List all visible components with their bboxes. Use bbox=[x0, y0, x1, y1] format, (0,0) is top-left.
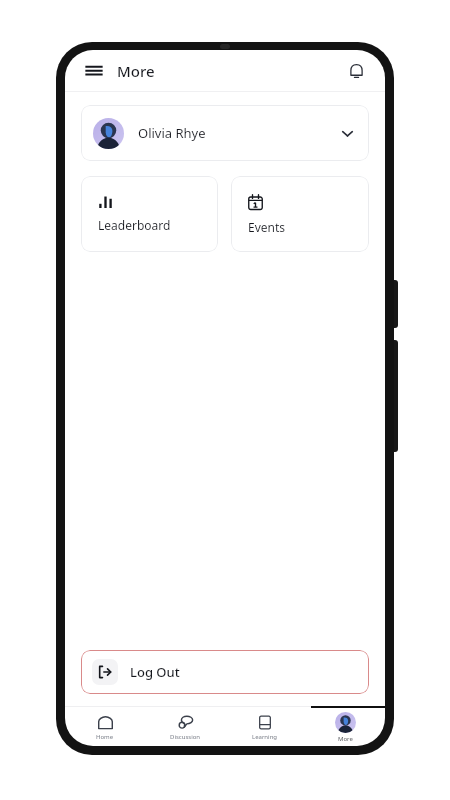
staticText: More bbox=[117, 61, 155, 81]
button[interactable]: Log Out bbox=[81, 650, 369, 694]
staticText: Home bbox=[96, 733, 114, 741]
button[interactable]: Open menu bbox=[79, 56, 109, 86]
staticText: Leaderboard bbox=[98, 217, 171, 233]
staticText: Log Out bbox=[130, 663, 180, 681]
button[interactable]: Home bbox=[65, 706, 145, 746]
button[interactable]: Learning bbox=[225, 706, 305, 746]
staticText: More bbox=[338, 735, 353, 743]
staticText: Olivia Rhye bbox=[138, 124, 206, 142]
staticText: Events bbox=[248, 219, 286, 235]
button[interactable]: Olivia Rhye bbox=[81, 105, 369, 161]
button[interactable]: Notifications bbox=[341, 56, 371, 86]
button[interactable]: More bbox=[305, 706, 385, 746]
button[interactable]: Discussion bbox=[145, 706, 225, 746]
button[interactable]: Leaderboard bbox=[81, 176, 218, 252]
button[interactable]: Events bbox=[231, 176, 369, 252]
staticText: Discussion bbox=[170, 733, 201, 741]
staticText: Learning bbox=[252, 733, 278, 741]
